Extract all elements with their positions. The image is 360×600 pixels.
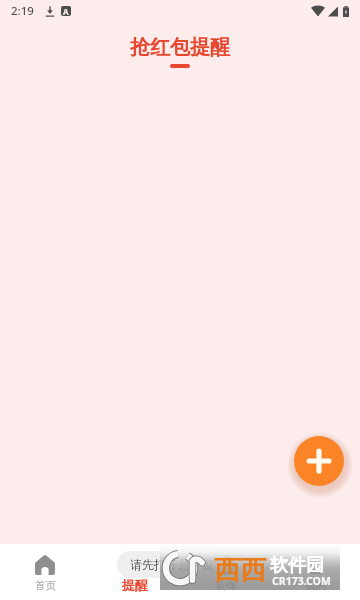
button[interactable]: 首页: [0, 544, 90, 600]
button[interactable]: 我的: [270, 544, 360, 600]
button[interactable]: Add reminder: [294, 436, 344, 486]
staticText: 首页: [35, 579, 56, 592]
staticText: 装饰: [215, 579, 236, 592]
staticText: 2:19: [11, 3, 34, 19]
staticText: 软件园: [270, 554, 324, 577]
staticText: 提醒: [122, 577, 148, 593]
staticText: 我的: [305, 579, 326, 592]
staticText: 抢红包提醒: [130, 35, 230, 60]
button[interactable]: 装饰: [180, 544, 270, 600]
staticText: CR173.COM: [272, 574, 331, 588]
staticText: 请先打开悬浮窗: [130, 557, 214, 572]
staticText: A: [63, 6, 69, 16]
staticText: 西西: [214, 554, 266, 587]
button[interactable]: 提醒: [90, 544, 180, 600]
